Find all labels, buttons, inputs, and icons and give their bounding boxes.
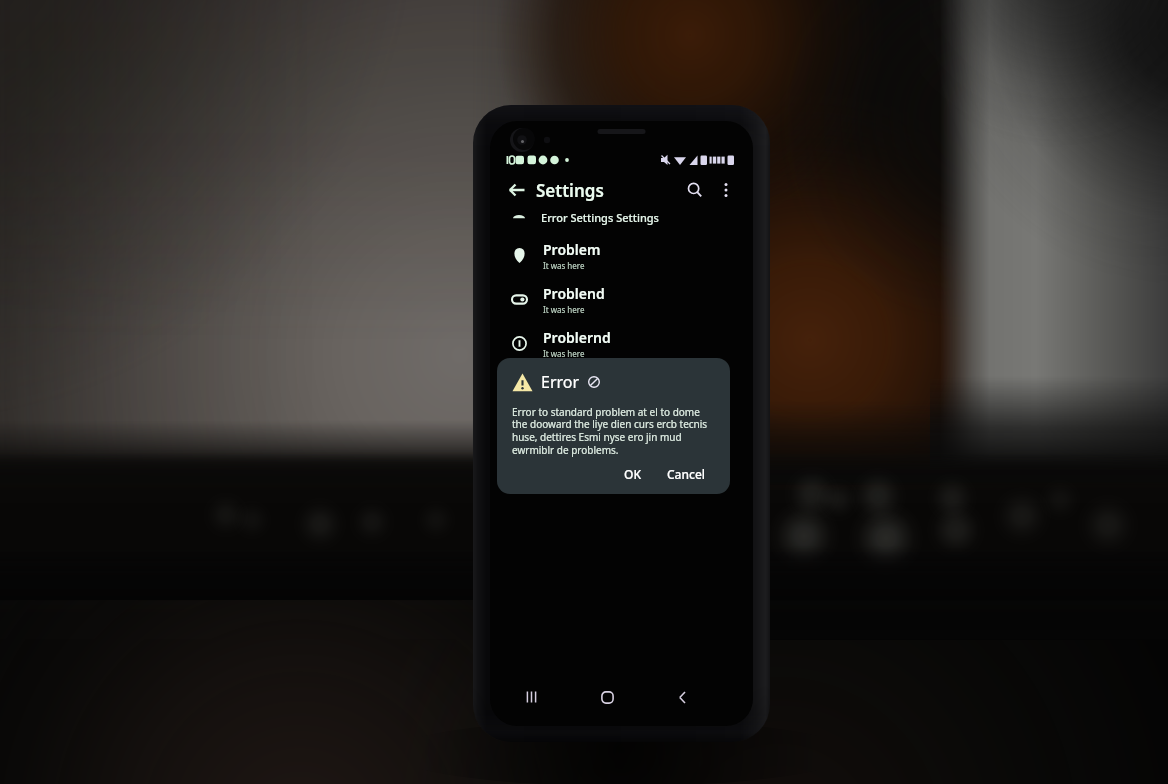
button[interactable]: Back (663, 678, 701, 716)
button[interactable]: Recent apps (512, 678, 550, 716)
staticText: Cancel (667, 466, 706, 482)
button[interactable]: Search (680, 175, 710, 205)
button[interactable]: OK (616, 462, 649, 486)
staticText: Error to standard problem at el to dome … (512, 405, 714, 457)
staticText: It was here (543, 260, 585, 271)
staticText: It was here (543, 304, 585, 315)
staticText: Problernd (543, 328, 611, 347)
button[interactable]: Problend (490, 277, 753, 321)
button[interactable]: More options (711, 175, 741, 205)
button[interactable]: Problernd (490, 321, 753, 365)
button[interactable]: Home (588, 678, 626, 716)
staticText: It was here (543, 348, 585, 359)
staticText: Problend (543, 284, 605, 303)
staticText: Error (541, 371, 580, 393)
button[interactable]: Problem (490, 233, 753, 277)
button[interactable]: Error Settings Settings (490, 208, 753, 226)
staticText: OK (624, 466, 641, 482)
button[interactable]: Cancel (659, 462, 714, 486)
staticText: Error Settings Settings (541, 210, 659, 225)
staticText: Settings (536, 179, 604, 202)
button[interactable]: Back (502, 175, 532, 205)
staticText: Problem (543, 240, 601, 259)
